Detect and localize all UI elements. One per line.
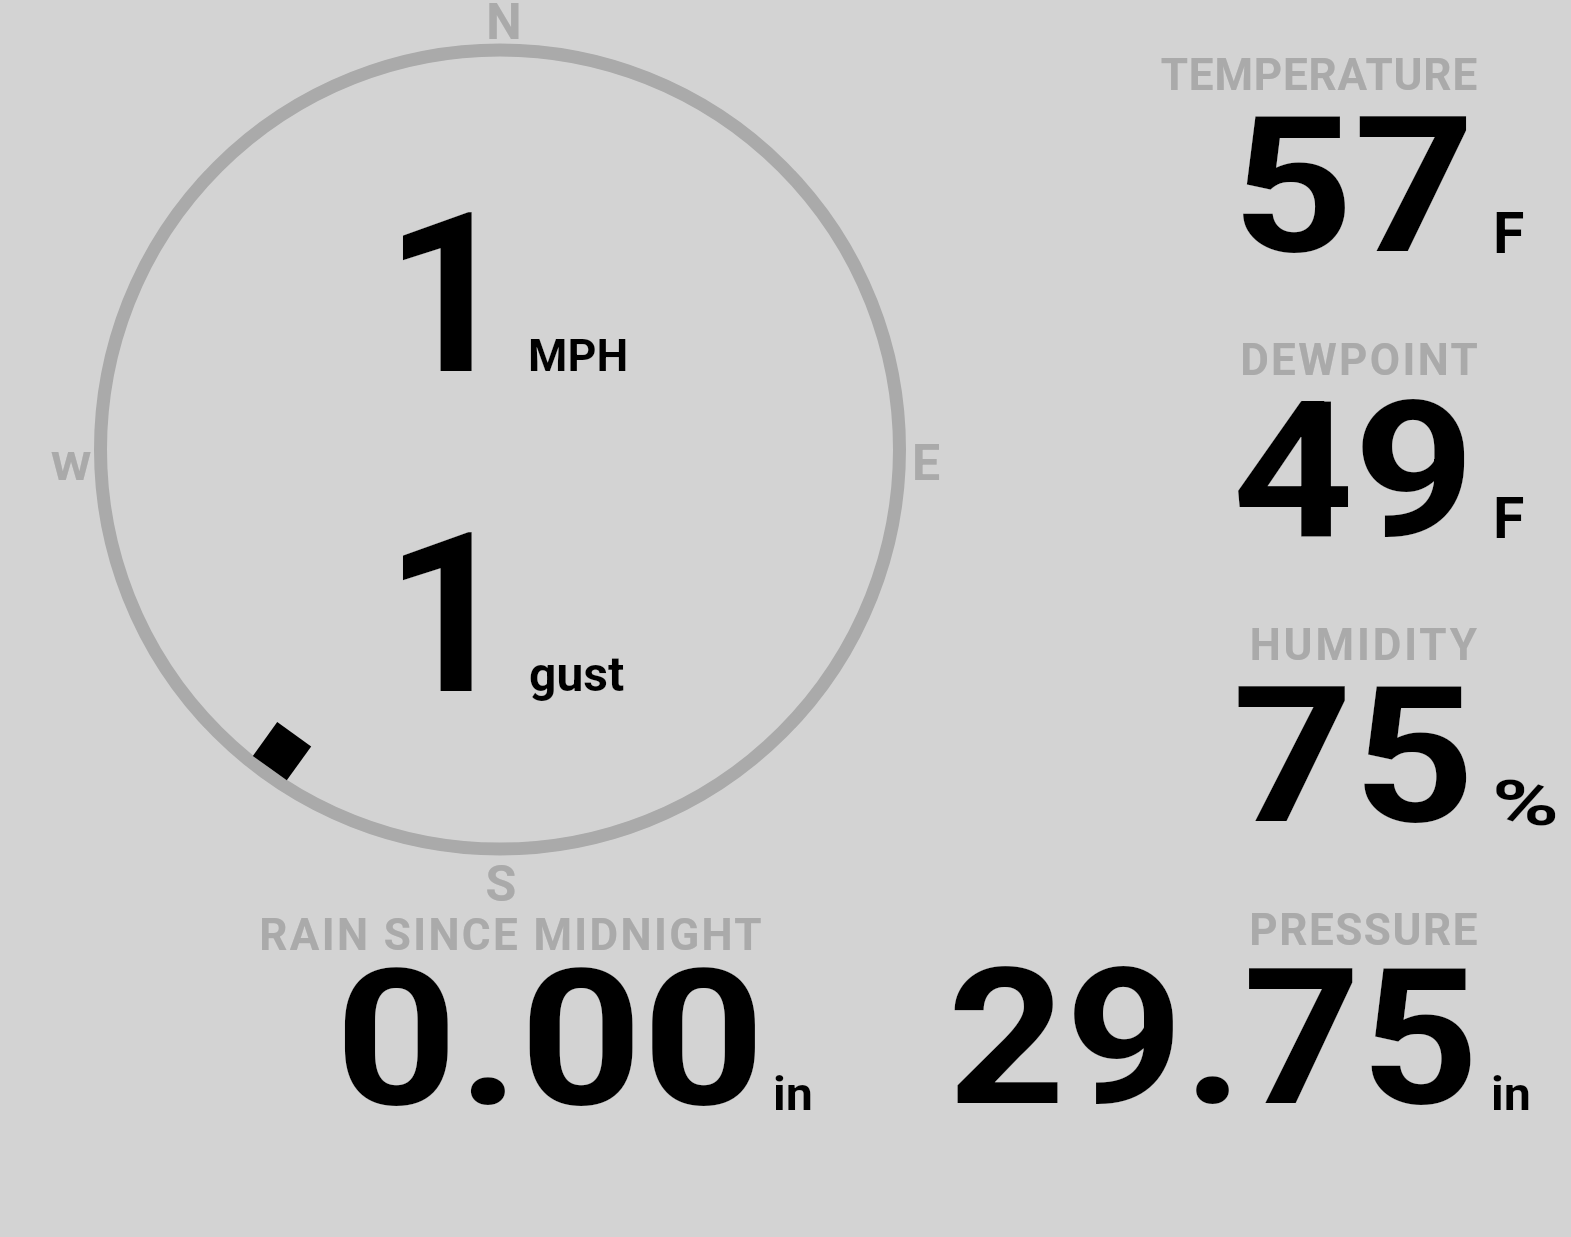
staticText: 1 [0,485,512,745]
button[interactable]: PRESSURE 29.75 in [900,895,1545,1125]
button[interactable]: TEMPERATURE 57 F [1140,40,1545,270]
staticText: 49 [138,360,1475,583]
staticText: RAIN SINCE MIDNIGHT [0,909,764,961]
staticText: F [1493,200,1525,267]
staticText: in [773,1066,813,1121]
staticText: gust [529,646,625,702]
staticText: 75 [138,645,1475,868]
staticText: TEMPERATURE [278,49,1478,101]
staticText: MPH [528,329,629,382]
staticText: DEWPOINT [280,334,1480,386]
button[interactable]: HUMIDITY 75 % [1140,610,1560,840]
staticText: W [0,445,315,490]
staticText: S [301,855,701,914]
staticText: 29.75 [181,927,1479,1150]
staticText: HUMIDITY [280,619,1480,671]
button[interactable]: RAIN SINCE MIDNIGHT 0.00 in [240,900,830,1125]
staticText: 57 [138,75,1475,298]
staticText: 0.00 [0,928,765,1151]
staticText: in [1491,1066,1531,1121]
staticText: F [1493,485,1525,552]
staticText: E [726,434,1126,493]
staticText: % [1492,767,1560,841]
staticText: PRESSURE [279,904,1479,956]
staticText: N [304,0,704,52]
button[interactable]: DEWPOINT 49 F [1140,325,1545,555]
staticText: 1 [0,165,512,425]
button[interactable]: Wind direction and speed dial [94,44,906,856]
